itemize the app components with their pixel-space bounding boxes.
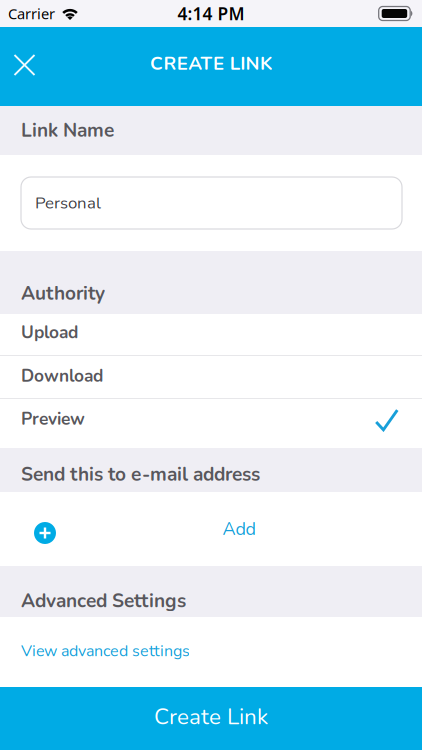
staticText: Authority [21,280,105,306]
staticText: Send this to e-mail address [21,461,260,487]
button[interactable]: View advanced settings [0,617,422,687]
button[interactable]: Create Link [0,687,422,750]
staticText: Carrier [8,4,55,23]
staticText: Advanced Settings [21,588,186,614]
staticText: Upload [21,321,78,344]
staticText: Download [21,364,103,388]
staticText: Create Link [154,702,268,732]
button[interactable]: Link Name, Personal [0,177,422,229]
button[interactable]: Add e-mail address [0,492,422,566]
staticText: Preview [21,407,85,431]
staticText: CREATE LINK [150,51,272,76]
staticText: Add [222,517,255,541]
button[interactable]: Preview [0,399,422,448]
button[interactable]: Close [0,27,47,106]
button[interactable]: Upload [0,314,422,356]
staticText: 4:14 PM [177,2,244,25]
staticText: Personal [35,191,101,214]
staticText: Link Name [21,117,114,143]
button[interactable]: Download [0,356,422,399]
staticText: View advanced settings [21,640,190,662]
